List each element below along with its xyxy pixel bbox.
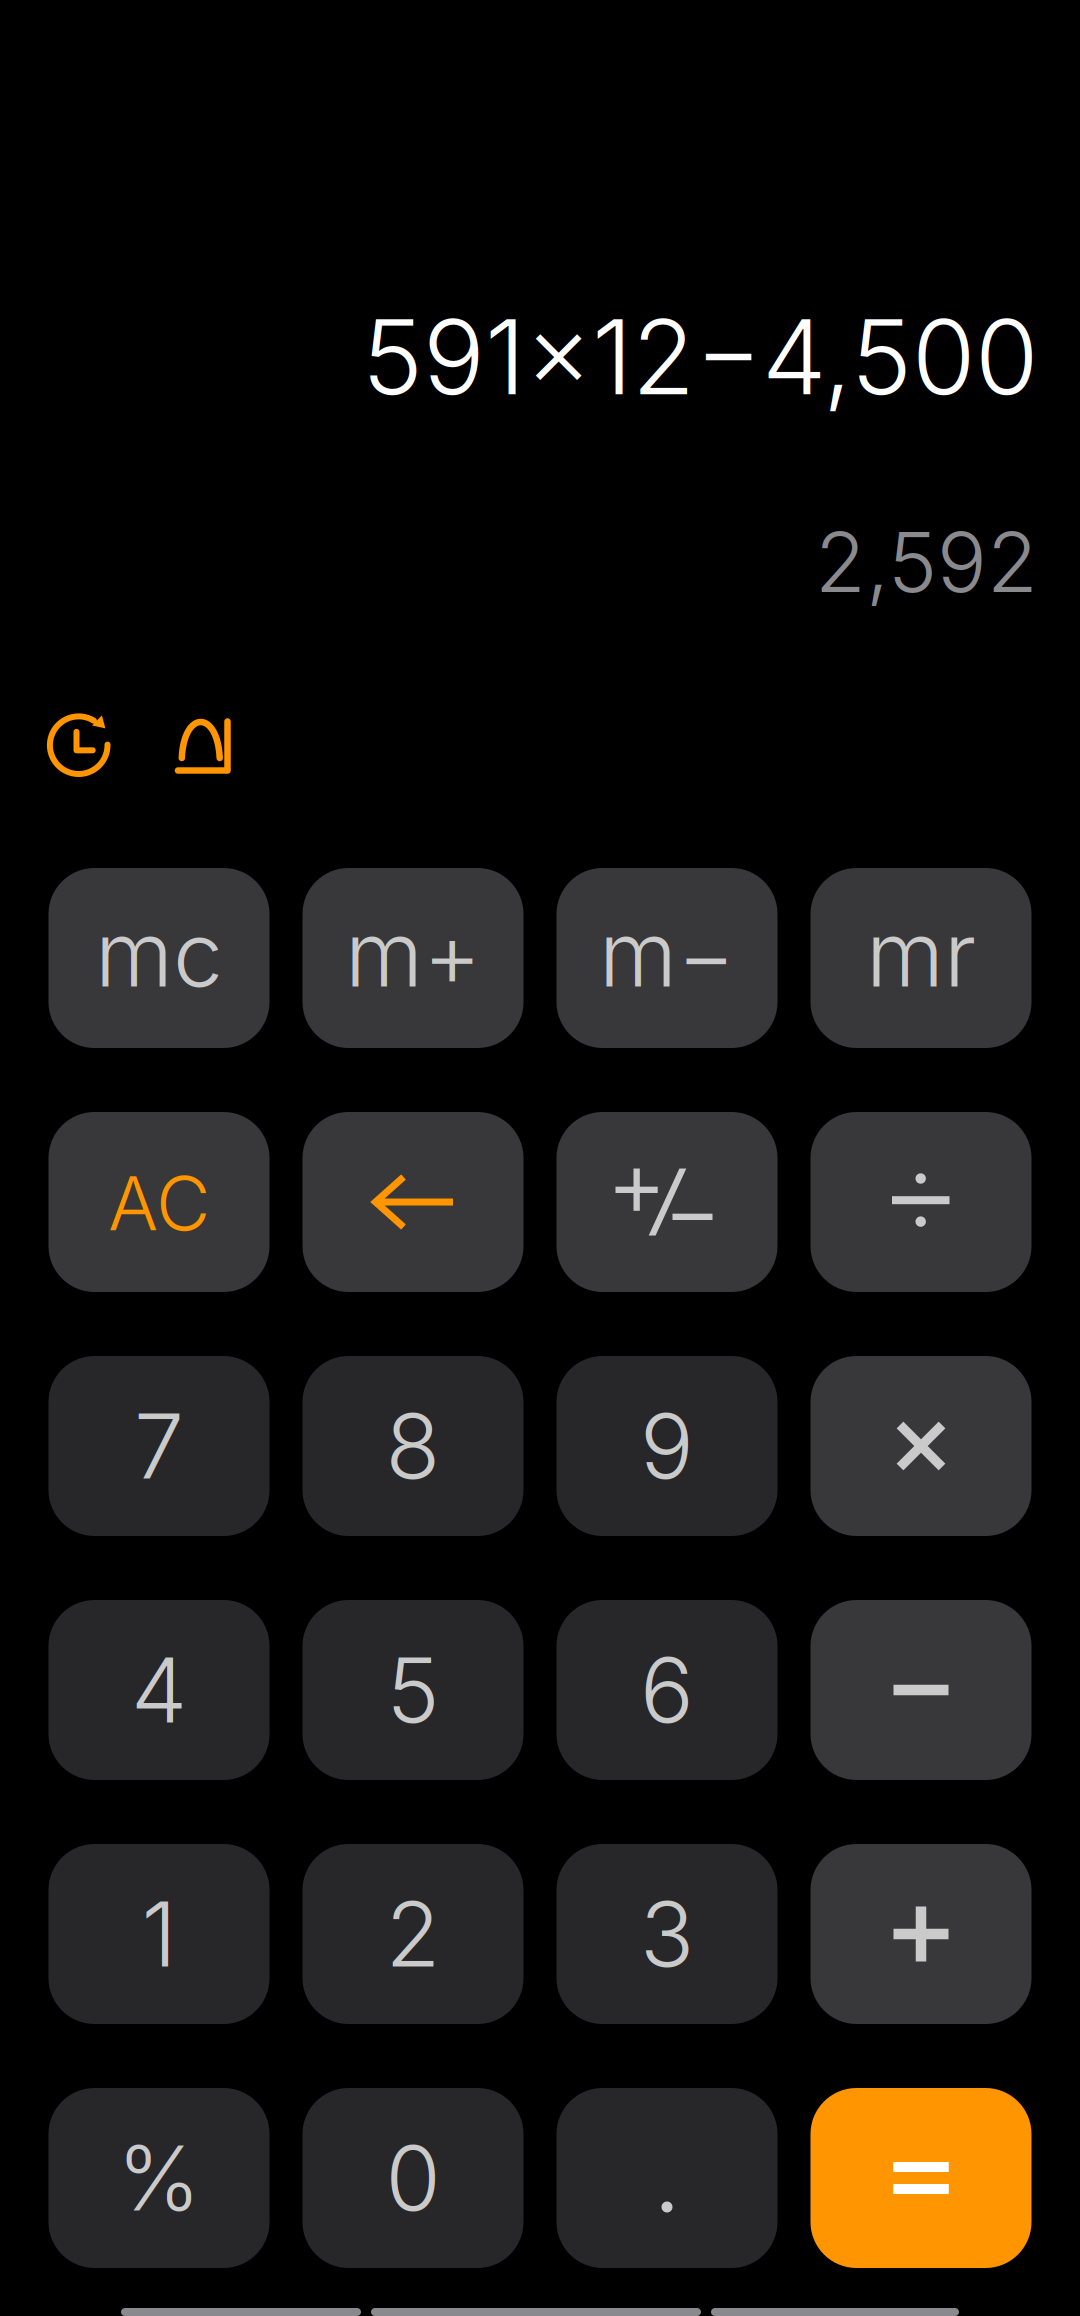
button[interactable]: 1 — [48, 1844, 269, 2024]
staticText: m+ — [345, 900, 481, 1008]
button[interactable]: m− — [556, 868, 777, 1048]
button[interactable]: Divide — [810, 1112, 1031, 1292]
button[interactable]: 8 — [302, 1356, 523, 1536]
button[interactable]: AC — [48, 1112, 269, 1292]
button[interactable]: 7 — [48, 1356, 269, 1536]
button[interactable]: mc — [48, 868, 269, 1048]
button[interactable]: Minus — [810, 1600, 1031, 1780]
button[interactable]: mr — [810, 868, 1031, 1048]
staticText: 9 — [640, 1392, 694, 1500]
staticText: 1 — [141, 1880, 176, 1988]
staticText: AC — [108, 1158, 210, 1248]
staticText: 6 — [640, 1636, 694, 1744]
button[interactable]: Plus — [810, 1844, 1031, 2024]
staticText: % — [117, 2124, 201, 2232]
staticText: 591×12−4,500 — [362, 295, 1038, 419]
staticText: 2 — [385, 1880, 440, 1988]
button[interactable]: m+ — [302, 868, 523, 1048]
button[interactable]: Functions — [155, 698, 251, 794]
staticText: 7 — [134, 1392, 184, 1500]
button[interactable]: 0 — [302, 2088, 523, 2268]
staticText: mc — [95, 900, 223, 1008]
button[interactable]: 6 — [556, 1600, 777, 1780]
button[interactable]: 2 — [302, 1844, 523, 2024]
staticText: 3 — [640, 1880, 694, 1988]
button[interactable]: % — [48, 2088, 269, 2268]
button[interactable]: History — [31, 698, 127, 794]
button[interactable]: 3 — [556, 1844, 777, 2024]
button[interactable]: Multiply — [810, 1356, 1031, 1536]
button[interactable]: 4 — [48, 1600, 269, 1780]
staticText: 4 — [131, 1636, 187, 1744]
button[interactable]: Decimal point — [556, 2088, 777, 2268]
staticText: mr — [866, 900, 976, 1008]
button[interactable]: Toggle sign — [556, 1112, 777, 1292]
button[interactable]: Backspace — [302, 1112, 523, 1292]
button[interactable]: 9 — [556, 1356, 777, 1536]
button[interactable]: Equals — [810, 2088, 1031, 2268]
staticText: 5 — [386, 1636, 439, 1744]
staticText: m− — [599, 900, 735, 1008]
staticText: 8 — [385, 1392, 440, 1500]
staticText: 0 — [385, 2124, 440, 2232]
staticText: 2,592 — [815, 512, 1038, 612]
button[interactable]: 5 — [302, 1600, 523, 1780]
